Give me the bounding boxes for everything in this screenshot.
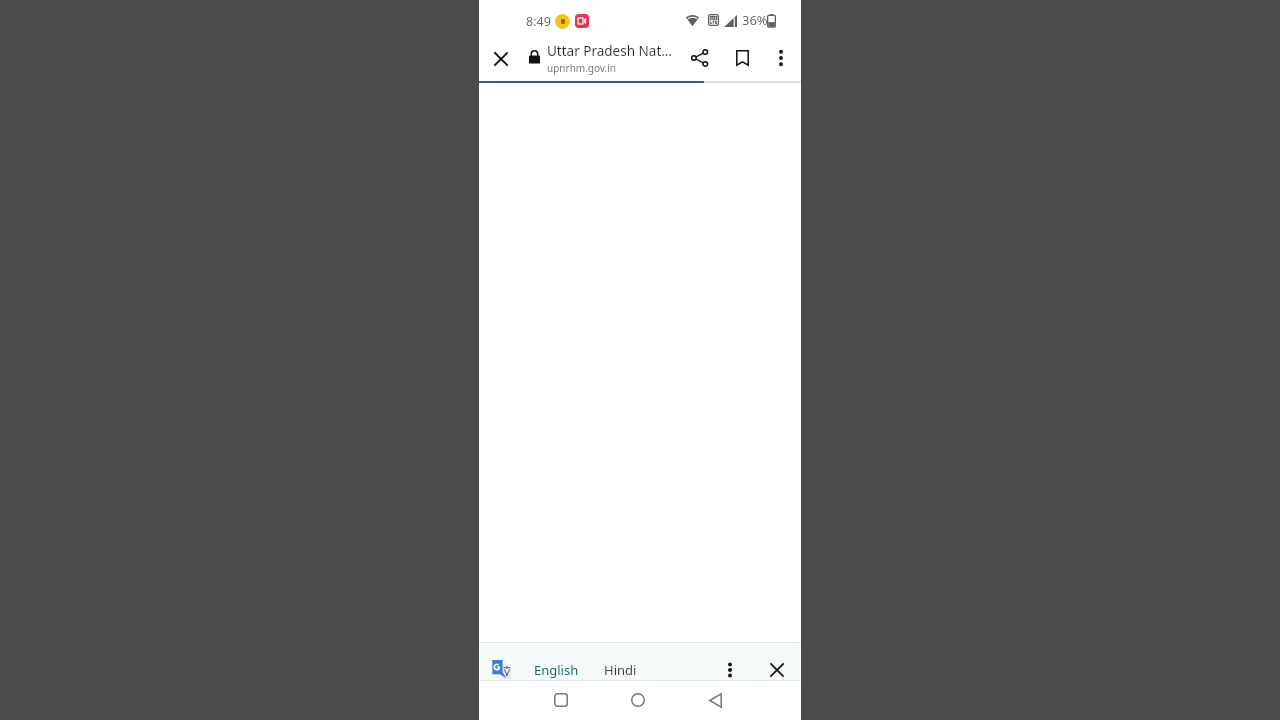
button[interactable]: Close — [485, 43, 516, 74]
button[interactable]: Share — [683, 42, 715, 74]
staticText: 8:49 — [526, 13, 551, 30]
button[interactable]: Recents — [545, 684, 577, 716]
button[interactable]: Close translate bar — [761, 654, 792, 685]
button[interactable]: English — [526, 655, 587, 685]
button[interactable]: Translate options — [714, 654, 745, 685]
button[interactable]: Uttar Pradesh Nat… — [539, 36, 683, 81]
button[interactable]: More options — [765, 42, 796, 73]
button[interactable]: Bookmark — [726, 42, 758, 74]
staticText: Hindi — [604, 661, 637, 679]
staticText: upnrhm.gov.in — [547, 61, 616, 75]
button[interactable]: Hindi — [596, 655, 645, 685]
button[interactable]: Back — [699, 684, 731, 716]
staticText: English — [534, 661, 579, 679]
button[interactable]: Home — [622, 684, 654, 716]
staticText: 36% — [742, 11, 768, 29]
staticText: Uttar Pradesh Nat… — [547, 42, 672, 60]
